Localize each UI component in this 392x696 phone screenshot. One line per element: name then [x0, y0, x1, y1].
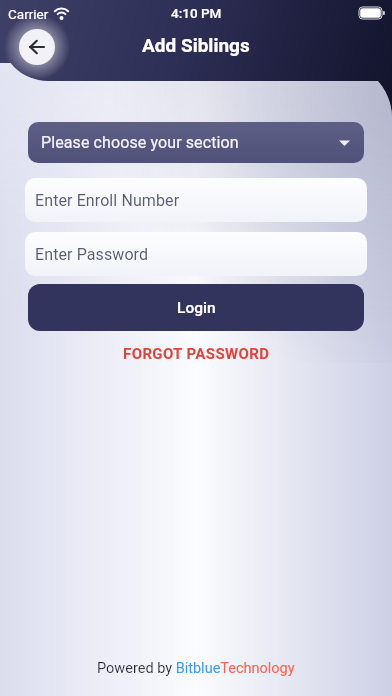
staticText: Add Siblings	[142, 34, 250, 56]
staticText: FORGOT PASSWORD	[123, 345, 270, 363]
staticText: Login	[177, 299, 216, 317]
button[interactable]	[19, 29, 55, 65]
staticText: Enter Enroll Number	[35, 191, 180, 210]
staticText: Powered by BitblueTechnology	[97, 660, 295, 677]
staticText: 4:10 PM	[171, 5, 222, 21]
button[interactable]: Login	[28, 284, 364, 331]
button[interactable]: Enter Enroll Number	[25, 178, 367, 222]
button[interactable]: FORGOT PASSWORD	[123, 345, 270, 363]
staticText: Please choose your section	[41, 133, 239, 152]
button[interactable]: Please choose your section	[28, 122, 364, 163]
button[interactable]: Enter Password	[25, 232, 367, 276]
staticText: Enter Password	[35, 245, 149, 264]
staticText: Carrier	[8, 6, 49, 22]
